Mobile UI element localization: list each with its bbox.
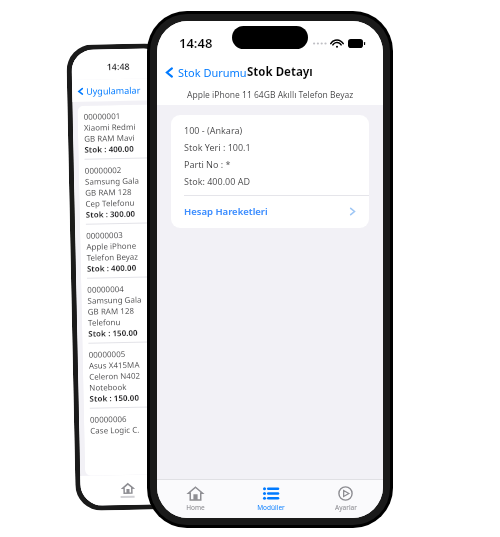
staticText: Case Logic C. — [90, 424, 140, 436]
staticText: 00000003 — [86, 229, 123, 241]
staticText: Hesap Hareketleri — [184, 205, 268, 218]
staticText: Xiaomi Redmi — [84, 121, 136, 133]
staticText: GB RAM Mavi — [84, 132, 135, 144]
staticText: Stok Detayı — [247, 64, 313, 80]
staticText: Stok : 400.00 — [84, 143, 134, 155]
staticText: Stok : 150.00 — [89, 392, 140, 404]
button[interactable]: Stok Durumu — [157, 62, 253, 83]
staticText: Notebook — [89, 381, 127, 393]
button[interactable]: Ayarlar — [308, 480, 383, 518]
staticText: Celeron N402 — [89, 370, 140, 382]
staticText: Stok Yeri : 100.1 — [184, 141, 251, 153]
staticText: 00000002 — [85, 164, 122, 176]
staticText: Apple iPhone — [86, 240, 136, 252]
staticText: 00000006 — [90, 413, 127, 425]
staticText: GB RAM 128 — [85, 186, 134, 198]
button[interactable]: Hesap Hareketleri — [171, 196, 369, 228]
staticText: 00000005 — [88, 348, 126, 360]
button[interactable]: Home — [157, 480, 233, 518]
staticText: Ayarlar — [335, 503, 357, 512]
staticText: Stok: 400.00 AD — [184, 175, 251, 187]
staticText: 14:48 — [106, 60, 131, 72]
staticText: Samsung Gala — [87, 294, 142, 306]
staticText: Samsung Gala — [85, 175, 139, 187]
staticText: 14:48 — [179, 34, 213, 52]
staticText: Modüller — [257, 503, 285, 512]
staticText: Asus X415MA — [89, 359, 140, 371]
staticText: Cep Telefonu — [85, 197, 135, 209]
staticText: Stok : 400.00 — [87, 262, 137, 274]
staticText: 00000001 — [83, 110, 121, 122]
staticText: Stok Durumu — [178, 65, 247, 80]
staticText: Telefonu — [88, 316, 121, 328]
staticText: Stok : 300.00 — [86, 208, 136, 220]
button[interactable]: Modüller — [233, 480, 308, 518]
staticText: 100 - (Ankara) — [184, 124, 243, 136]
staticText: 00000004 — [87, 283, 124, 295]
staticText: GB RAM 128 — [88, 305, 137, 317]
staticText: Uygulamalar — [86, 84, 141, 97]
staticText: Stok : 150.00 — [88, 327, 138, 339]
staticText: Parti No : * — [184, 158, 231, 170]
staticText: Apple iPhone 11 64GB Akıllı Telefon Beya… — [187, 89, 354, 101]
staticText: Home — [186, 503, 205, 512]
staticText: Telefon Beyaz — [86, 251, 139, 263]
